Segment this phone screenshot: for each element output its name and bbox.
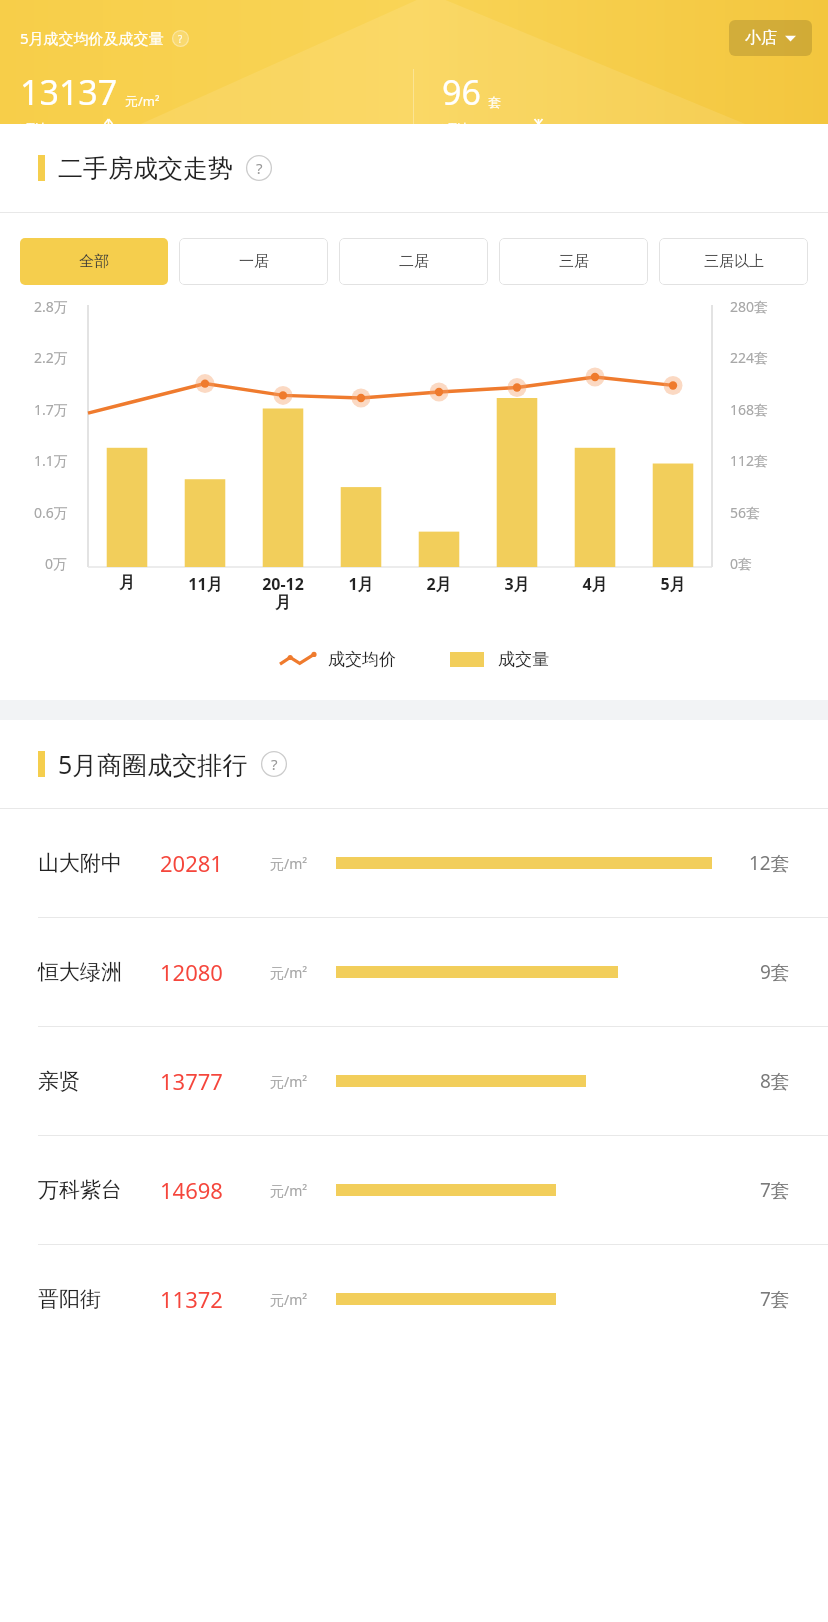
staticText: 亲贤 xyxy=(38,1068,80,1094)
button[interactable]: 二居 xyxy=(339,238,488,285)
staticText: 56套 xyxy=(730,503,761,522)
button[interactable]: 万科紫台 xyxy=(0,1136,828,1244)
staticText: 万科紫台 xyxy=(38,1177,122,1203)
staticText: 成交均价 xyxy=(328,649,396,670)
staticText: 2.8万 xyxy=(34,297,68,316)
button[interactable]: 晋阳街 xyxy=(0,1245,828,1353)
staticText: 3月 xyxy=(504,573,530,595)
button[interactable]: 恒大绿洲 xyxy=(0,918,828,1026)
staticText: 月 xyxy=(119,573,135,593)
staticText: 5月 xyxy=(660,573,686,595)
button[interactable]: 小店 xyxy=(729,20,812,56)
staticText: 元/m² xyxy=(125,92,160,110)
staticText: 112套 xyxy=(730,451,769,470)
staticText: ? xyxy=(256,158,263,179)
staticText: 224套 xyxy=(730,348,769,367)
staticText: 晋阳街 xyxy=(38,1286,101,1312)
staticText: 1月 xyxy=(348,573,374,595)
staticText: 20-12 月 xyxy=(262,573,304,613)
staticText: 全部 xyxy=(79,252,109,271)
staticText: 元/m² xyxy=(270,1181,308,1200)
staticText: 7套 xyxy=(760,1177,790,1203)
staticText: 2月 xyxy=(426,573,452,595)
staticText: 0.6万 xyxy=(34,503,68,522)
staticText: 7套 xyxy=(760,1286,790,1312)
button[interactable]: 全部 xyxy=(20,238,168,285)
staticText: 三居以上 xyxy=(704,252,764,271)
button[interactable]: 一居 xyxy=(179,238,328,285)
staticText: 12套 xyxy=(749,850,790,876)
staticText: ? xyxy=(271,754,278,775)
staticText: 5月成交均价及成交量 xyxy=(20,28,164,48)
staticText: 8套 xyxy=(760,1068,790,1094)
staticText: 280套 xyxy=(730,297,769,316)
button[interactable]: 亲贤 xyxy=(0,1027,828,1135)
staticText: 元/m² xyxy=(270,1072,308,1091)
staticText: 96 xyxy=(442,69,481,115)
staticText: 11月 xyxy=(188,573,223,595)
staticText: 4月 xyxy=(582,573,608,595)
staticText: 1.7万 xyxy=(34,400,68,419)
staticText: 三居 xyxy=(559,252,589,271)
button[interactable]: 帮助说明 xyxy=(246,155,272,181)
button[interactable]: 三居以上 xyxy=(659,238,808,285)
staticText: 12080 xyxy=(160,957,223,987)
button[interactable]: 山大附中 xyxy=(0,809,828,917)
staticText: 14698 xyxy=(160,1175,223,1205)
staticText: 一居 xyxy=(239,252,269,271)
staticText: 0套 xyxy=(730,554,753,573)
staticText: 小店 xyxy=(745,28,777,48)
staticText: 二手房成交走势 xyxy=(58,153,233,184)
staticText: 元/m² xyxy=(270,963,308,982)
staticText: 恒大绿洲 xyxy=(38,959,122,985)
staticText: 成交量 xyxy=(498,649,549,670)
button[interactable]: 帮助说明 xyxy=(172,30,189,47)
staticText: 9套 xyxy=(760,959,790,985)
staticText: 20281 xyxy=(160,848,223,878)
staticText: 2.2万 xyxy=(34,348,68,367)
staticText: 1.1万 xyxy=(34,451,68,470)
staticText: 套 xyxy=(488,94,501,110)
staticText: 5月商圈成交排行 xyxy=(58,747,248,781)
staticText: 元/m² xyxy=(270,854,308,873)
staticText: 11372 xyxy=(160,1284,223,1314)
staticText: 元/m² xyxy=(270,1290,308,1309)
staticText: 13777 xyxy=(160,1066,223,1096)
staticText: 二居 xyxy=(399,252,429,271)
staticText: 环比11.93% xyxy=(442,119,523,124)
button[interactable]: 三居 xyxy=(499,238,648,285)
staticText: 0万 xyxy=(45,554,68,573)
button[interactable]: 帮助说明 xyxy=(261,751,287,777)
staticText: 168套 xyxy=(730,400,769,419)
staticText: ? xyxy=(178,32,183,45)
staticText: 山大附中 xyxy=(38,850,122,876)
staticText: 环比7.77% xyxy=(20,119,93,124)
staticText: 13137 xyxy=(20,69,118,115)
